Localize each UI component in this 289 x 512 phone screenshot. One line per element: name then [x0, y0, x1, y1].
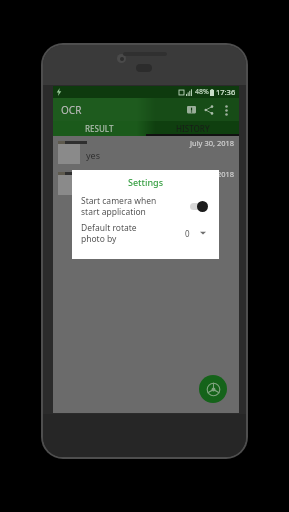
staticText: HISTORY: [176, 123, 210, 134]
staticText: 48%: [195, 87, 209, 97]
button[interactable]: More options: [218, 102, 234, 118]
button[interactable]: Feedback: [182, 101, 200, 119]
button[interactable]: Share: [200, 101, 218, 119]
staticText: July 30, 2018: [190, 138, 235, 148]
staticText: Default rotate photo by: [81, 222, 185, 244]
button[interactable]: July 30, 2018: [53, 136, 239, 167]
staticText: Start camera when start application: [81, 195, 186, 217]
staticText: OCR: [61, 103, 82, 117]
button[interactable]: Default rotate photo by: [81, 222, 210, 244]
button[interactable]: HISTORY: [146, 121, 239, 136]
staticText: yes: [86, 149, 100, 161]
staticText: July 30, 2018: [190, 169, 235, 179]
staticText: RESULT: [85, 123, 114, 134]
button[interactable]: Take photo: [199, 375, 227, 403]
staticText: Settings: [81, 176, 210, 188]
staticText: 0: [185, 228, 190, 239]
button[interactable]: Start camera when start application: [81, 195, 210, 217]
button[interactable]: July 30, 2018: [53, 167, 239, 198]
button[interactable]: RESULT: [53, 121, 146, 136]
staticText: 17:36: [216, 87, 236, 97]
